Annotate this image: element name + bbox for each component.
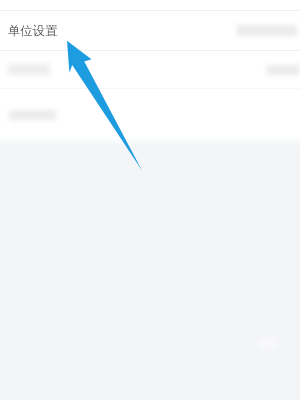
button[interactable]: 单位设置 [0,11,300,50]
button[interactable] [0,89,300,136]
other: Pointer [0,0,300,400]
staticText: 单位设置 [8,23,58,38]
button[interactable] [0,51,300,88]
